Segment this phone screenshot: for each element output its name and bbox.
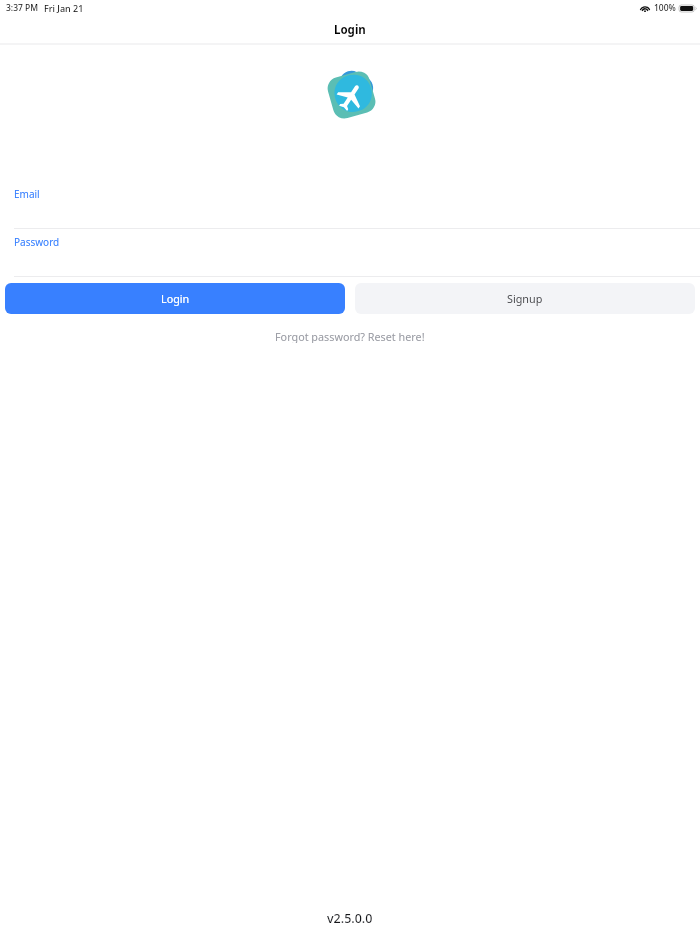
button[interactable]: Forgot password? Reset here! [269,327,431,345]
staticText: Login [334,22,366,38]
staticText: Signup [507,291,543,306]
staticText: 3:37 PM [6,2,39,14]
staticText: v2.5.0.0 [327,910,373,927]
staticText: Login [161,291,190,306]
other: Battery 100 percent [679,5,696,12]
button[interactable]: Login [5,283,345,314]
staticText: Email [14,187,40,201]
button[interactable]: Email [0,181,700,229]
staticText: Fri Jan 21 [44,2,84,14]
other: App logo [328,71,375,119]
staticText: Password [14,235,60,249]
button[interactable]: Signup [355,283,695,314]
other: Wi-Fi [640,5,650,12]
button[interactable]: Password [0,229,700,277]
staticText: Forgot password? Reset here! [275,329,425,343]
staticText: 100% [654,2,676,14]
